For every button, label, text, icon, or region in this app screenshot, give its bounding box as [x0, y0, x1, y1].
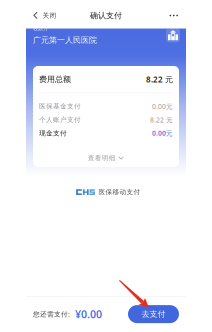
staticText: 确认支付	[90, 11, 122, 20]
button[interactable]: 去支付	[128, 305, 179, 323]
staticText: 您还需支付:	[33, 310, 70, 319]
staticText: 关闭	[42, 11, 56, 20]
staticText: ¥0.00	[75, 307, 102, 321]
staticText: 医保基金支付	[39, 102, 81, 110]
staticText: 个人账户支付	[39, 116, 81, 124]
staticText: 广元第一人民医院	[33, 35, 97, 45]
staticText: 去支付	[141, 309, 165, 319]
staticText: 医保移动支付	[98, 188, 140, 196]
staticText: 费用总额	[39, 74, 71, 84]
staticText: 8.22 元	[146, 74, 173, 85]
button[interactable]: More options	[161, 2, 186, 28]
staticText: 0.00元	[152, 102, 173, 111]
button[interactable]: 关闭	[26, 2, 62, 28]
staticText: 查看明细	[88, 154, 116, 162]
staticText: 8.22 元	[150, 115, 173, 124]
staticText: 收款方	[33, 25, 48, 32]
staticText: 0.00元	[152, 129, 173, 138]
staticText: 现金支付	[39, 129, 67, 137]
button[interactable]: 查看明细	[33, 140, 179, 172]
